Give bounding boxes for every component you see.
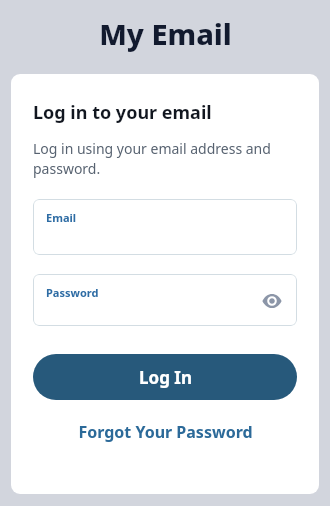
button[interactable]: Email — [33, 199, 297, 255]
button[interactable]: Password — [33, 274, 297, 326]
staticText: My Email — [99, 14, 232, 53]
staticText: Log In — [139, 366, 192, 389]
staticText: Forgot Your Password — [78, 421, 253, 443]
button[interactable]: Show password — [257, 285, 287, 315]
staticText: Log in to your email — [33, 100, 212, 125]
button[interactable]: Log In — [33, 354, 297, 400]
staticText: Email — [46, 210, 77, 225]
button[interactable]: Forgot Your Password — [33, 416, 297, 448]
staticText: Password — [46, 285, 99, 300]
staticText: Log in using your email address and pass… — [33, 139, 297, 179]
